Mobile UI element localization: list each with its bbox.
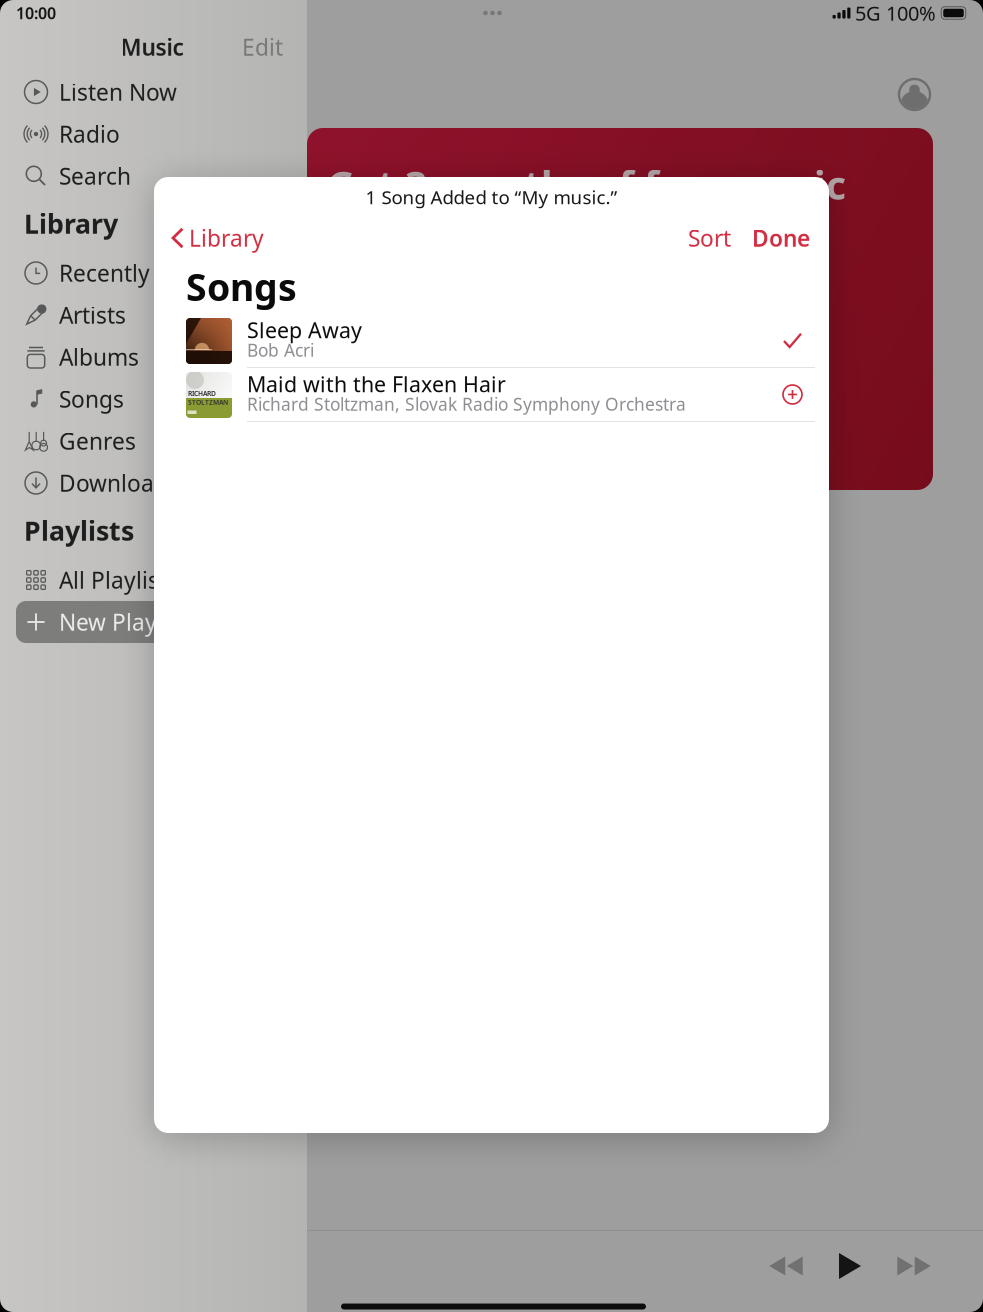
button[interactable]: Downloaded — [0, 462, 307, 504]
staticText: Downloaded — [59, 468, 195, 498]
button[interactable]: Albums — [0, 336, 307, 378]
button[interactable]: Radio — [0, 113, 307, 155]
staticText: Maid with the Flaxen Hair — [247, 370, 506, 398]
staticText: 1 Song Added to “My music.” — [365, 185, 617, 209]
staticText: All Playlists — [59, 565, 178, 595]
staticText: 10:00 — [16, 2, 56, 24]
staticText: Songs — [186, 262, 297, 311]
staticText: Music — [120, 32, 183, 62]
staticText: STOLTZMAN — [188, 398, 228, 407]
staticText: Library — [24, 206, 118, 241]
staticText: Sleep Away — [247, 316, 362, 344]
button[interactable]: Play — [818, 1243, 882, 1289]
button[interactable]: Edit — [242, 32, 283, 62]
staticText: Bob Acri — [247, 338, 314, 361]
staticText: New Playlist — [59, 607, 188, 637]
staticText: Playlists — [24, 513, 134, 548]
button[interactable]: All Playlists — [0, 559, 307, 601]
button[interactable]: Songs — [0, 378, 307, 420]
staticText: Get 3 months of free music — [327, 159, 846, 210]
staticText: Artists — [59, 300, 126, 330]
button[interactable]: Sort — [681, 218, 738, 258]
button[interactable]: Search — [0, 155, 307, 197]
staticText: Done — [752, 223, 810, 253]
staticText: Albums — [59, 342, 139, 372]
button[interactable]: Listen Now — [0, 71, 307, 113]
button[interactable]: Fast forward — [882, 1243, 946, 1289]
staticText: RICHARD — [188, 389, 216, 398]
staticText: Songs — [59, 384, 124, 414]
staticText: Library — [189, 223, 264, 253]
staticText: Richard Stoltzman, Slovak Radio Symphony… — [247, 392, 686, 415]
button[interactable]: Done — [738, 218, 814, 258]
staticText: 5G 100% — [855, 0, 936, 26]
staticText: Sort — [688, 223, 731, 253]
button[interactable]: New Playlist — [0, 601, 307, 643]
staticText: Radio — [59, 119, 120, 149]
button[interactable]: Rewind — [754, 1243, 818, 1289]
button[interactable]: Sleep Away — [154, 314, 829, 368]
staticText: Edit — [242, 32, 283, 62]
button[interactable]: Artists — [0, 294, 307, 336]
button[interactable]: Library — [168, 218, 268, 258]
staticText: Genres — [59, 426, 136, 456]
button[interactable]: Account — [899, 79, 930, 110]
staticText: Search — [59, 161, 131, 191]
button[interactable]: Genres — [0, 420, 307, 462]
staticText: Listen Now — [59, 77, 177, 107]
staticText: Recently Added — [59, 258, 225, 288]
button[interactable]: RICHARD — [154, 368, 829, 422]
button[interactable]: Recently Added — [0, 252, 307, 294]
